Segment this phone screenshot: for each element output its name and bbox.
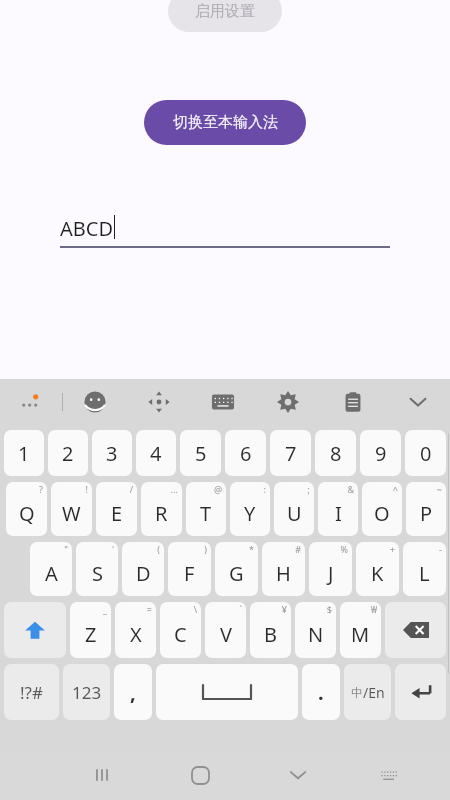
button[interactable]: ; bbox=[274, 482, 314, 536]
staticText: 6 bbox=[240, 440, 252, 467]
button[interactable]: ... bbox=[141, 482, 182, 536]
button[interactable]: Backspace bbox=[385, 602, 446, 658]
button[interactable]: ₩ bbox=[340, 602, 381, 658]
staticText: % bbox=[309, 543, 348, 555]
button[interactable]: 9 bbox=[360, 430, 401, 476]
staticText: ; bbox=[274, 483, 310, 495]
staticText: L bbox=[419, 560, 430, 587]
staticText: 5 bbox=[195, 440, 207, 467]
button[interactable]: # bbox=[262, 542, 305, 596]
staticText: Q bbox=[19, 500, 35, 527]
button[interactable]: Home bbox=[151, 750, 249, 800]
staticText: Z bbox=[85, 621, 97, 648]
staticText: 切换至本输入法 bbox=[173, 113, 278, 132]
button[interactable]: Clipboard bbox=[320, 379, 385, 425]
staticText: # bbox=[262, 543, 301, 555]
button[interactable]: 4 bbox=[136, 430, 176, 476]
button[interactable]: Hide keyboard bbox=[385, 379, 450, 425]
staticText: ` bbox=[205, 603, 242, 615]
button[interactable]: ' bbox=[76, 542, 118, 596]
button[interactable]: % bbox=[309, 542, 352, 596]
staticText: X bbox=[130, 621, 142, 648]
button[interactable]: 7 bbox=[270, 430, 311, 476]
staticText: ( bbox=[122, 543, 160, 555]
staticText: ? bbox=[6, 483, 43, 495]
staticText: 1 bbox=[18, 440, 30, 467]
button[interactable]: + bbox=[356, 542, 399, 596]
button[interactable]: Space bbox=[156, 664, 298, 720]
button[interactable]: Switch keyboard bbox=[347, 750, 430, 800]
button[interactable]: 中 bbox=[344, 664, 391, 720]
button[interactable]: 0 bbox=[405, 430, 446, 476]
staticText: 中 bbox=[351, 685, 363, 700]
staticText: $ bbox=[295, 603, 332, 615]
staticText: N bbox=[308, 621, 324, 648]
staticText: 2 bbox=[62, 440, 74, 467]
staticText: = bbox=[115, 603, 152, 615]
staticText: ¥ bbox=[250, 603, 287, 615]
staticText: 3 bbox=[106, 440, 118, 467]
staticText: / bbox=[96, 483, 133, 495]
button[interactable]: 5 bbox=[180, 430, 221, 476]
button[interactable]: 切换至本输入法 bbox=[144, 100, 306, 145]
staticText: ₩ bbox=[340, 603, 377, 615]
staticText: & bbox=[318, 483, 354, 495]
button[interactable]: 1 bbox=[4, 430, 44, 476]
button[interactable]: ¥ bbox=[250, 602, 291, 658]
staticText: Y bbox=[244, 500, 256, 527]
button[interactable]: 启用设置 bbox=[168, 0, 282, 32]
button[interactable]: ? bbox=[6, 482, 47, 536]
other: Shift bbox=[24, 619, 46, 641]
staticText: : bbox=[230, 483, 266, 495]
staticText: D bbox=[136, 560, 151, 587]
staticText: K bbox=[371, 560, 384, 587]
button[interactable]: \ bbox=[160, 602, 201, 658]
button[interactable]: 123 bbox=[63, 664, 110, 720]
button[interactable]: More options bbox=[0, 379, 62, 425]
staticText: F bbox=[184, 560, 195, 587]
button[interactable]: / bbox=[96, 482, 137, 536]
button[interactable]: : bbox=[230, 482, 270, 536]
staticText: 8 bbox=[330, 440, 342, 467]
button[interactable]: Recents bbox=[53, 750, 151, 800]
button[interactable]: !?# bbox=[4, 664, 59, 720]
staticText: ^ bbox=[362, 483, 398, 495]
button[interactable]: Keyboard layout bbox=[191, 379, 255, 425]
button[interactable]: ( bbox=[122, 542, 164, 596]
staticText: _ bbox=[70, 603, 107, 615]
button[interactable]: $ bbox=[295, 602, 336, 658]
staticText: ' bbox=[76, 543, 114, 555]
button[interactable]: ~ bbox=[406, 482, 446, 536]
button[interactable]: ) bbox=[168, 542, 211, 596]
staticText: R bbox=[155, 500, 168, 527]
button[interactable]: Emoji bbox=[63, 379, 127, 425]
staticText: O bbox=[374, 500, 390, 527]
button[interactable]: 2 bbox=[48, 430, 88, 476]
button[interactable]: ` bbox=[205, 602, 246, 658]
button[interactable]: Shift bbox=[4, 602, 66, 658]
button[interactable]: . bbox=[302, 664, 340, 720]
button[interactable]: Enter bbox=[395, 664, 446, 720]
button[interactable]: @ bbox=[186, 482, 226, 536]
button[interactable]: , bbox=[114, 664, 152, 720]
button[interactable]: * bbox=[215, 542, 258, 596]
staticText: /En bbox=[363, 683, 385, 702]
staticText: 0 bbox=[420, 440, 432, 467]
button[interactable]: _ bbox=[70, 602, 111, 658]
button[interactable]: 3 bbox=[92, 430, 132, 476]
button[interactable]: = bbox=[115, 602, 156, 658]
button[interactable]: ^ bbox=[362, 482, 402, 536]
button[interactable]: Move cursor bbox=[127, 379, 191, 425]
button[interactable]: Back bbox=[249, 750, 347, 800]
staticText: . bbox=[318, 679, 324, 706]
button[interactable]: " bbox=[30, 542, 72, 596]
button[interactable]: 6 bbox=[225, 430, 266, 476]
other: Enter bbox=[409, 680, 433, 704]
button[interactable]: & bbox=[318, 482, 358, 536]
button[interactable]: 8 bbox=[315, 430, 356, 476]
staticText: H bbox=[276, 560, 291, 587]
button[interactable]: - bbox=[403, 542, 446, 596]
button[interactable]: Settings bbox=[255, 379, 320, 425]
staticText: * bbox=[215, 543, 254, 555]
button[interactable]: ! bbox=[51, 482, 92, 536]
